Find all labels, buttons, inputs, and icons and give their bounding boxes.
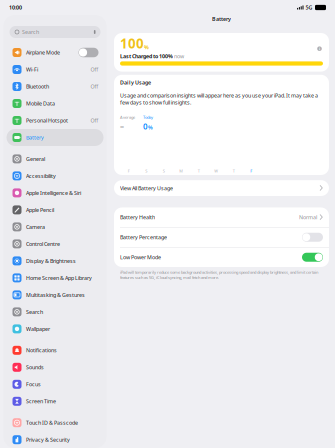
button[interactable]: Camera: [3, 218, 106, 235]
staticText: Touch ID & Passcode: [26, 419, 78, 426]
staticText: Today: [143, 114, 153, 120]
staticText: Home Screen & App Library: [26, 274, 92, 281]
staticText: 100: [120, 34, 144, 52]
staticText: Multitasking & Gestures: [26, 291, 85, 298]
staticText: %: [144, 44, 149, 51]
staticText: Search: [22, 28, 39, 36]
staticText: Privacy & Security: [26, 436, 70, 443]
staticText: View All Battery Usage: [120, 184, 173, 192]
staticText: F: [128, 168, 130, 173]
button[interactable]: Bluetooth: [3, 78, 106, 95]
staticText: Off: [90, 66, 98, 73]
staticText: 5G: [305, 4, 312, 11]
staticText: Screen Time: [26, 398, 56, 405]
staticText: Usage and comparison insights will appea…: [120, 92, 318, 106]
staticText: Accessibility: [26, 172, 56, 179]
staticText: Battery Percentage: [120, 234, 167, 241]
staticText: Last Charged to 100%: [120, 53, 173, 60]
staticText: M: [179, 168, 183, 173]
button[interactable]: Airplane Mode: [3, 44, 106, 61]
staticText: %: [148, 124, 153, 131]
staticText: Apple Pencil: [26, 206, 54, 213]
staticText: iPad will temporarily reduce some backgr…: [120, 269, 318, 280]
staticText: Battery Health: [120, 214, 155, 221]
button[interactable]: Battery info: [316, 45, 323, 52]
button[interactable]: Accessibility: [3, 167, 106, 184]
staticText: Off: [90, 117, 98, 124]
staticText: Mobile Data: [26, 100, 55, 107]
button[interactable]: Search: [3, 303, 106, 320]
button[interactable]: Multitasking & Gestures: [3, 286, 106, 303]
button[interactable]: Control Centre: [3, 235, 106, 252]
button[interactable]: Touch ID & Passcode: [3, 414, 106, 431]
button[interactable]: Wi-Fi: [3, 61, 106, 78]
staticText: Wi-Fi: [26, 66, 38, 73]
staticText: Personal Hotspot: [26, 117, 68, 124]
staticText: Bluetooth: [26, 83, 49, 90]
button[interactable]: Notifications: [3, 342, 106, 359]
staticText: Daily Usage: [120, 79, 151, 86]
staticText: Off: [90, 83, 98, 90]
staticText: T: [198, 168, 200, 173]
staticText: now: [173, 53, 184, 60]
staticText: Wallpaper: [26, 325, 50, 332]
button[interactable]: Mobile Data: [3, 95, 106, 112]
staticText: Low Power Mode: [120, 254, 161, 261]
staticText: Display & Brightness: [26, 257, 76, 264]
staticText: Notifications: [26, 347, 57, 354]
staticText: F: [250, 168, 252, 173]
staticText: T: [233, 168, 235, 173]
button[interactable]: Turn off: [302, 253, 323, 262]
staticText: Sounds: [26, 364, 44, 371]
button[interactable]: Turn on: [302, 233, 323, 242]
button[interactable]: Screen Time: [3, 393, 106, 410]
button[interactable]: Privacy & Security: [3, 431, 106, 448]
button[interactable]: View All Battery Usage: [114, 180, 329, 196]
button[interactable]: General: [3, 150, 106, 167]
staticText: Battery: [26, 134, 44, 141]
staticText: 10:00: [9, 4, 22, 11]
button[interactable]: Personal Hotspot: [3, 112, 106, 129]
staticText: General: [26, 155, 45, 162]
staticText: i: [319, 46, 320, 51]
button[interactable]: Display & Brightness: [3, 252, 106, 269]
staticText: Focus: [26, 381, 41, 388]
button[interactable]: Battery Health: [114, 207, 329, 227]
staticText: Camera: [26, 223, 45, 230]
staticText: Apple Intelligence & Siri: [26, 189, 81, 196]
button[interactable]: Apple Pencil: [3, 201, 106, 218]
staticText: –: [120, 121, 124, 132]
button[interactable]: Home Screen & App Library: [3, 269, 106, 286]
staticText: Search: [26, 308, 43, 315]
staticText: 0: [143, 121, 148, 132]
staticText: Normal: [299, 214, 317, 221]
button[interactable]: Focus: [3, 376, 106, 393]
button[interactable]: Apple Intelligence & Siri: [3, 184, 106, 201]
staticText: S: [163, 168, 165, 173]
staticText: Control Centre: [26, 240, 60, 247]
button[interactable]: Sounds: [3, 359, 106, 376]
staticText: Average: [120, 114, 135, 120]
staticText: W: [214, 168, 218, 173]
staticText: S: [145, 168, 147, 173]
button[interactable]: Battery: [3, 129, 106, 146]
button[interactable]: Wallpaper: [3, 320, 106, 337]
staticText: Airplane Mode: [26, 49, 60, 56]
staticText: Battery: [212, 15, 231, 23]
